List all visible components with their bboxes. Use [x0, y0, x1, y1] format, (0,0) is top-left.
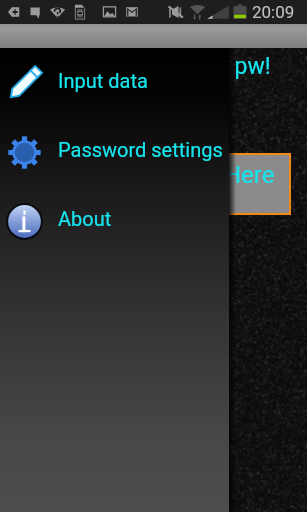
staticText: Input data: [58, 69, 148, 92]
staticText: About: [58, 207, 112, 230]
button[interactable]: Click Here: [210, 153, 291, 215]
staticText: Type your pw!: [130, 53, 271, 80]
button[interactable]: Input data: [0, 46, 229, 115]
staticText: 20:09: [252, 2, 295, 22]
button[interactable]: About: [0, 184, 229, 253]
staticText: Click Here: [166, 161, 275, 189]
button[interactable]: Password settings: [0, 115, 229, 184]
staticText: Password settings: [58, 138, 223, 161]
